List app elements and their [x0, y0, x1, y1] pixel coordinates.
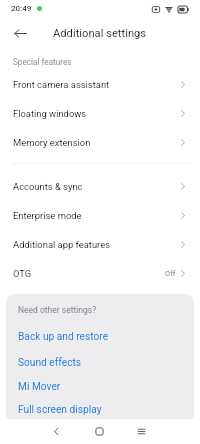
- button[interactable]: Mi Mover: [6, 374, 194, 399]
- button[interactable]: Back: [9, 22, 31, 44]
- staticText: Accounts & sync: [13, 181, 83, 192]
- button[interactable]: OTG: [0, 259, 200, 288]
- staticText: Need other settings?: [18, 305, 97, 315]
- staticText: Additional settings: [53, 27, 147, 40]
- button[interactable]: Front camera assistant: [0, 70, 200, 99]
- staticText: Front camera assistant: [13, 79, 110, 90]
- staticText: Sound effects: [18, 357, 82, 369]
- staticText: Enterprise mode: [13, 210, 82, 221]
- button[interactable]: Recents: [130, 419, 152, 444]
- staticText: Memory extension: [13, 137, 91, 148]
- staticText: OTG: [13, 268, 32, 279]
- button[interactable]: Enterprise mode: [0, 201, 200, 230]
- button[interactable]: Additional app features: [0, 230, 200, 259]
- staticText: Full screen display: [18, 404, 102, 416]
- button[interactable]: Sound effects: [6, 350, 194, 375]
- button[interactable]: Full screen display: [6, 397, 194, 419]
- staticText: Off: [165, 269, 176, 278]
- button[interactable]: Accounts & sync: [0, 172, 200, 201]
- staticText: Special features: [13, 57, 72, 67]
- button[interactable]: Floating windows: [0, 99, 200, 128]
- staticText: Mi Mover: [18, 381, 61, 393]
- staticText: Floating windows: [13, 108, 87, 119]
- button[interactable]: Home: [88, 419, 110, 444]
- staticText: Additional app features: [13, 239, 111, 250]
- button[interactable]: Back: [45, 419, 67, 444]
- staticText: Back up and restore: [18, 331, 109, 343]
- staticText: 20:49: [11, 4, 32, 13]
- button[interactable]: Memory extension: [0, 128, 200, 157]
- button[interactable]: Back up and restore: [6, 324, 194, 349]
